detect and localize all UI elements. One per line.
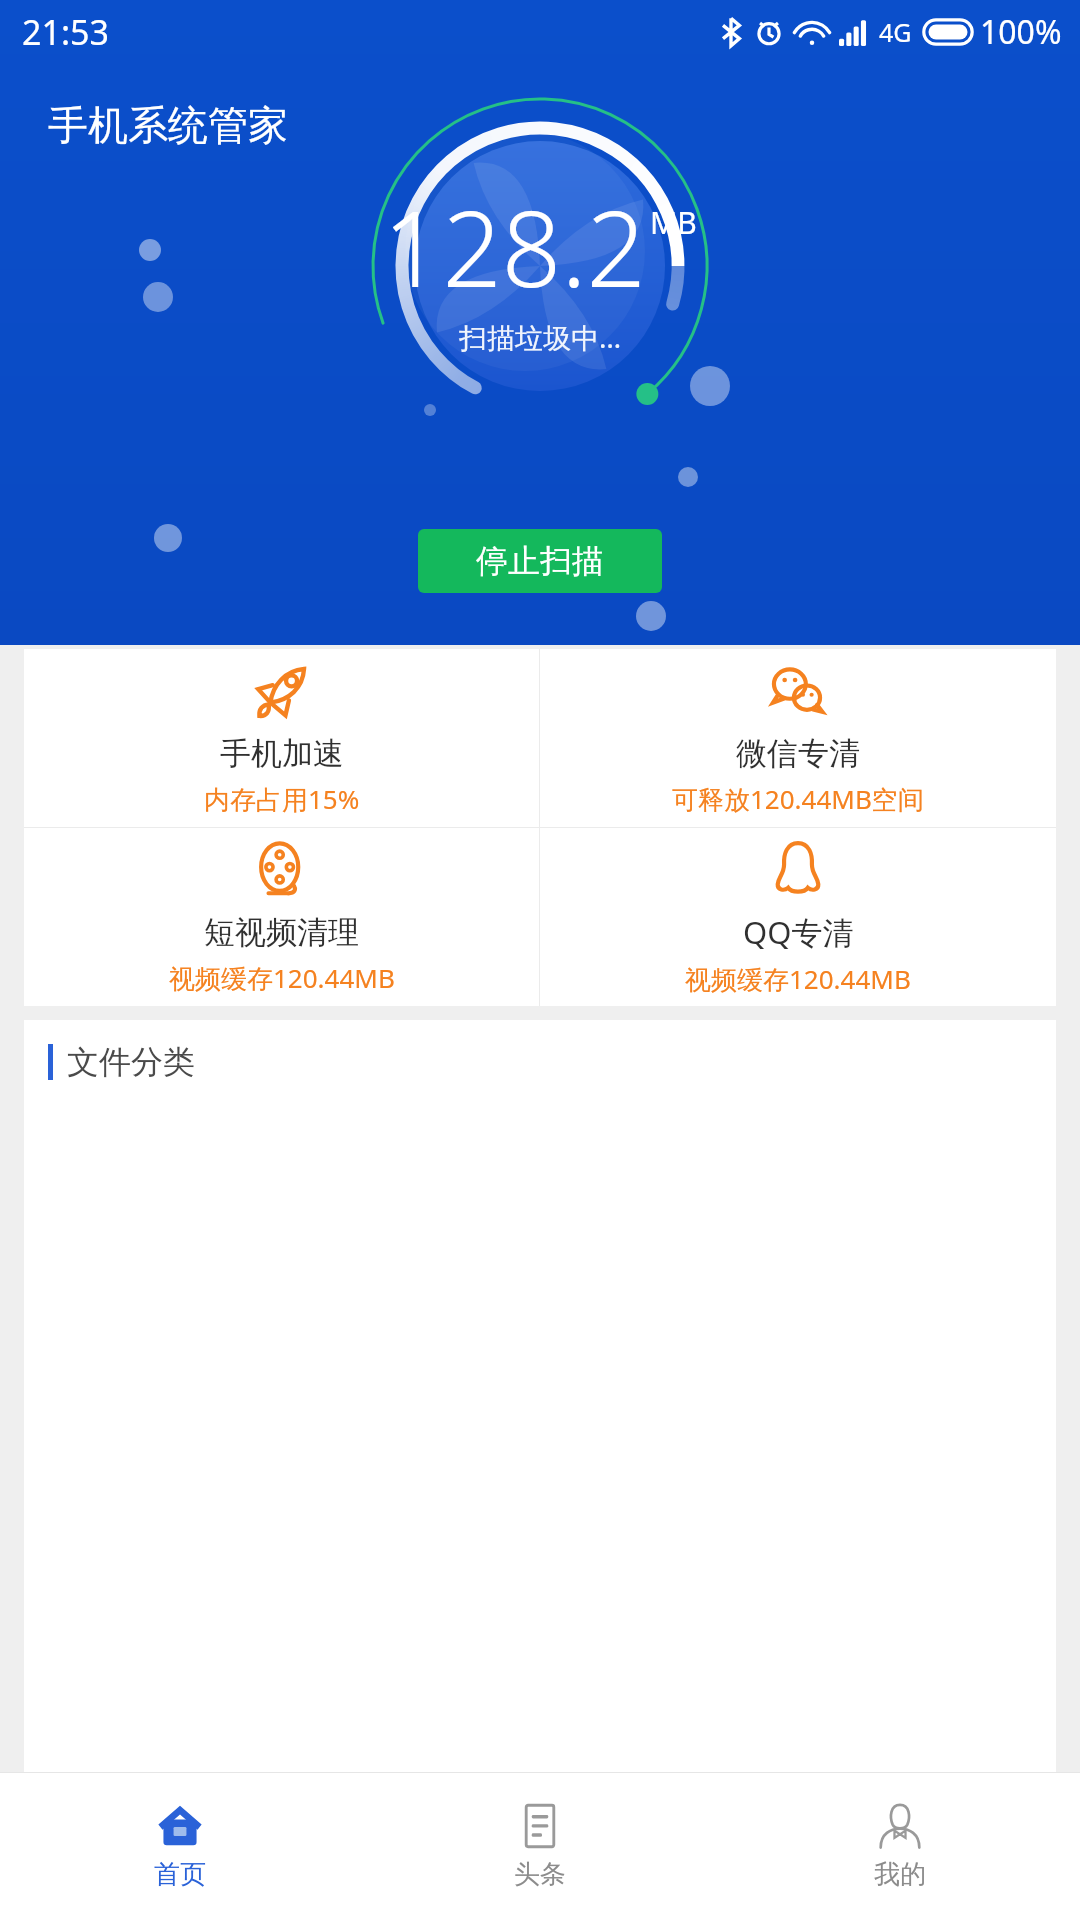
staticText: 短视频清理 (204, 913, 359, 952)
other: WeChat clean (769, 662, 827, 720)
staticText: MB (650, 202, 697, 243)
staticText: 头条 (514, 1858, 566, 1891)
staticText: 我的 (874, 1858, 926, 1891)
staticText: 手机加速 (220, 734, 344, 773)
other: Profile (877, 1803, 923, 1849)
button[interactable]: Home (0, 1772, 360, 1920)
staticText: 128.2 (383, 176, 646, 318)
staticText: 100% (980, 10, 1062, 54)
staticText: 扫描垃圾中… (459, 318, 622, 356)
staticText: 4G (879, 15, 912, 49)
other: Headlines (517, 1803, 563, 1849)
staticText: 21:53 (22, 9, 109, 55)
other: QQ clean (769, 839, 827, 897)
button[interactable]: 文件分类 (24, 1020, 1056, 1772)
button[interactable]: 停止扫描 (418, 529, 662, 593)
button[interactable]: Headlines (360, 1772, 720, 1920)
button[interactable]: Profile (720, 1772, 1080, 1920)
staticText: 视频缓存120.44MB (169, 960, 395, 996)
other: Phone boost (253, 662, 311, 720)
staticText: 微信专清 (736, 734, 860, 773)
other: Short video clean (253, 841, 311, 899)
staticText: 内存占用15% (204, 781, 360, 817)
other: Home (157, 1803, 203, 1849)
staticText: 视频缓存120.44MB (685, 961, 911, 997)
button[interactable]: WeChat clean (540, 649, 1056, 827)
staticText: 可释放120.44MB空间 (672, 781, 924, 817)
staticText: 文件分类 (67, 1042, 195, 1082)
button[interactable]: Short video clean (24, 828, 539, 1006)
staticText: 首页 (154, 1858, 206, 1891)
button[interactable]: QQ clean (540, 828, 1056, 1006)
staticText: QQ专清 (743, 911, 854, 953)
staticText: 停止扫描 (476, 541, 604, 581)
button[interactable]: Phone boost (24, 649, 539, 827)
staticText: 手机系统管家 (48, 100, 288, 150)
